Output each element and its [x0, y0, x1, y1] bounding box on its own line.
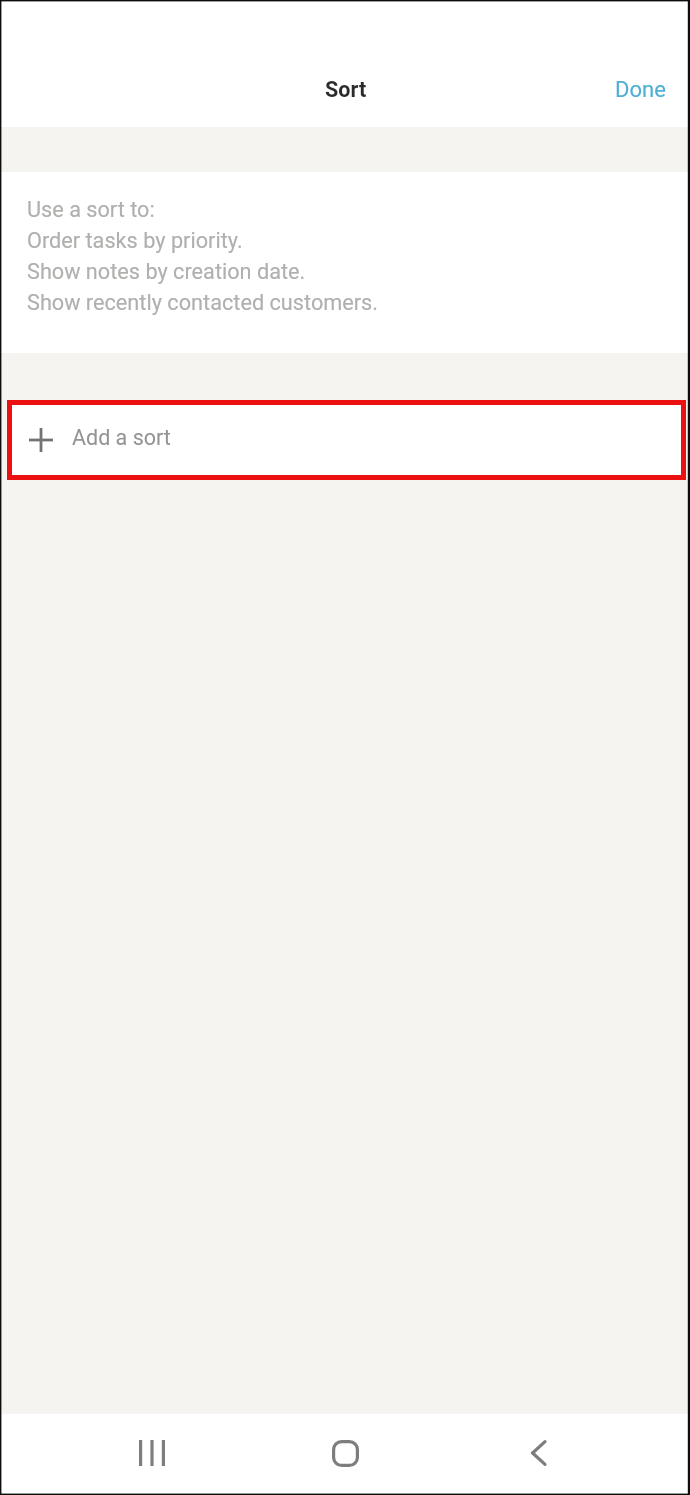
staticText: Done [615, 77, 666, 103]
button[interactable]: Recent apps [97, 1414, 207, 1493]
staticText: Show recently contacted customers. [27, 285, 379, 316]
staticText: Use a sort to: [27, 192, 155, 223]
staticText: Add a sort [72, 425, 171, 450]
staticText: Show notes by creation date. [27, 254, 306, 285]
button[interactable]: Back [483, 1414, 593, 1493]
button[interactable]: Home [290, 1414, 400, 1493]
staticText: Order tasks by priority. [27, 223, 243, 254]
button[interactable]: Done [595, 57, 686, 123]
staticText: Sort [325, 77, 367, 102]
button[interactable]: Add a sort [12, 405, 681, 475]
